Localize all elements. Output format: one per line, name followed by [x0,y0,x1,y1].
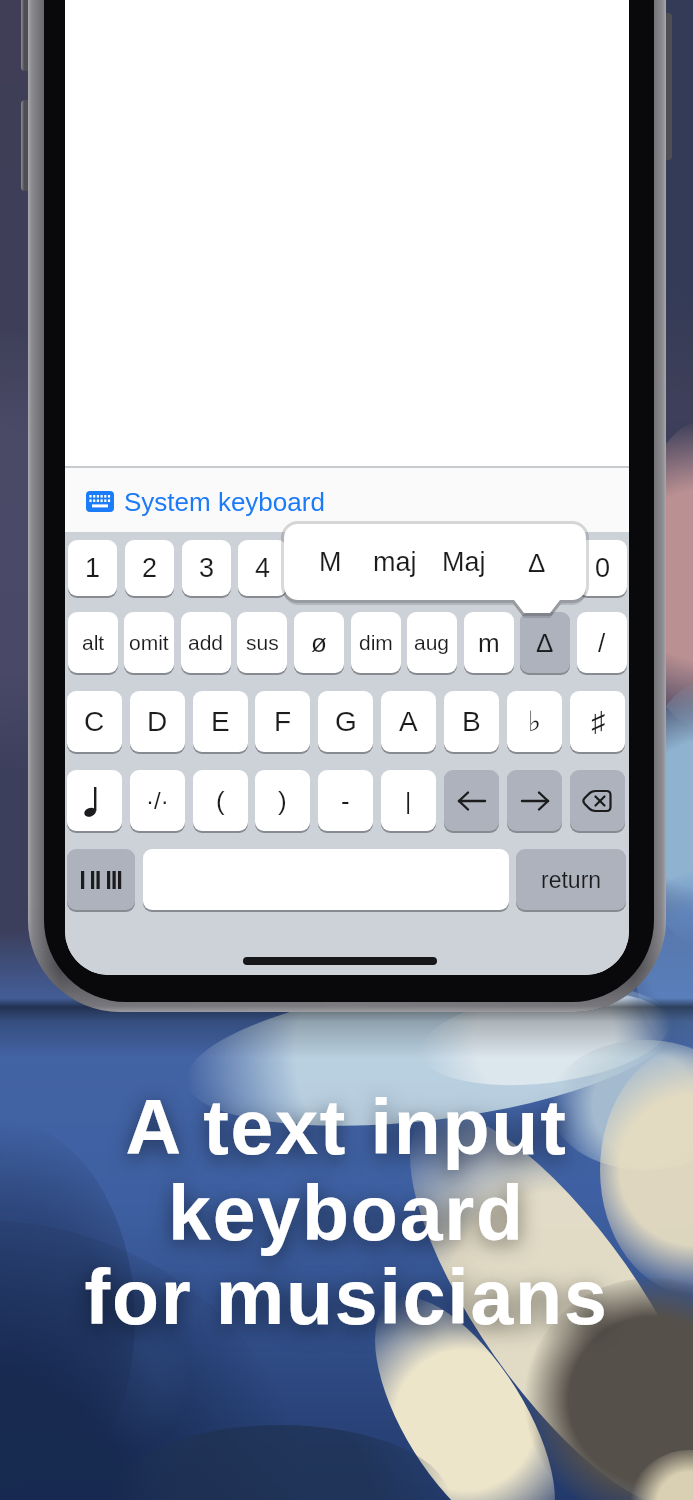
staticText: / [598,628,606,657]
staticText: F [274,706,292,737]
staticText: 6 [368,553,384,583]
button[interactable]: ♭ [507,691,562,752]
button[interactable]: 2 [125,540,174,596]
button[interactable]: - [318,770,373,831]
button[interactable]: 1 [68,540,117,596]
staticText: 0 [595,553,611,583]
button[interactable] [65,468,629,532]
staticText: 2 [142,553,158,583]
staticText: aug [414,631,450,654]
staticText: sus [246,631,279,654]
staticText: 3 [199,553,215,583]
button[interactable]: sus [237,612,287,673]
button[interactable]: E [193,691,248,752]
button[interactable]: m [464,612,514,673]
button[interactable]: 9 [521,540,570,596]
staticText: E [211,706,230,737]
staticText: maj [373,547,417,577]
button[interactable]: omit [124,612,174,673]
staticText: - [341,786,350,815]
staticText: ( [216,786,225,815]
button[interactable]: B [444,691,499,752]
staticText: 1 [85,553,101,583]
staticText: 8 [481,553,497,583]
staticText: ♭ [528,705,542,738]
staticText: System keyboard [124,487,325,516]
button[interactable]: aug [407,612,457,673]
staticText: dim [359,631,393,654]
button[interactable]: A [381,691,436,752]
staticText: add [188,631,224,654]
button[interactable]: / [577,612,627,673]
staticText: Maj [442,547,486,577]
button[interactable]: ) [255,770,310,831]
staticText: m [478,628,500,657]
button[interactable]: 4 [238,540,287,596]
staticText: C [84,706,105,737]
button[interactable]: add [181,612,231,673]
button[interactable]: ( [193,770,248,831]
staticText: ) [278,786,287,815]
staticText: Δ [536,628,554,657]
staticText: M [319,547,342,577]
button[interactable]: 8 [464,540,513,596]
button[interactable] [67,849,135,910]
button[interactable]: alt [68,612,118,673]
button[interactable]: 6 [351,540,400,596]
button[interactable] [507,770,562,831]
button[interactable] [444,770,499,831]
staticText: | [405,787,412,814]
staticText: 9 [538,553,554,583]
button[interactable]: | [381,770,436,831]
button[interactable]: 5 [295,540,344,596]
staticText: 4 [255,553,271,583]
staticText: alt [82,631,105,654]
button[interactable]: G [318,691,373,752]
staticText: Δ [528,548,546,577]
button[interactable]: dim [351,612,401,673]
button[interactable]: ♯ [570,691,625,752]
button[interactable]: return [516,849,626,910]
button[interactable]: 0 [578,540,627,596]
staticText: G [335,706,357,737]
staticText: for musicians [0,1254,693,1340]
staticText: ø [311,628,327,657]
staticText: A [399,706,418,737]
button[interactable]: C [67,691,122,752]
button[interactable]: ·/· [130,770,185,831]
staticText: ♯ [591,706,605,737]
button[interactable] [570,770,625,831]
staticText: B [462,706,481,737]
staticText: keyboard [0,1170,693,1256]
button[interactable]: D [130,691,185,752]
button[interactable]: 7 [408,540,457,596]
button[interactable] [143,849,509,910]
staticText: 5 [312,553,328,583]
staticText: ·/· [146,787,169,814]
staticText: return [541,867,602,893]
button[interactable] [67,770,122,831]
button[interactable]: F [255,691,310,752]
staticText: D [147,706,168,737]
button[interactable]: Δ [520,612,570,673]
staticText: A text input [0,1084,693,1170]
staticText: omit [129,631,169,654]
button[interactable]: ø [294,612,344,673]
button[interactable]: 3 [182,540,231,596]
